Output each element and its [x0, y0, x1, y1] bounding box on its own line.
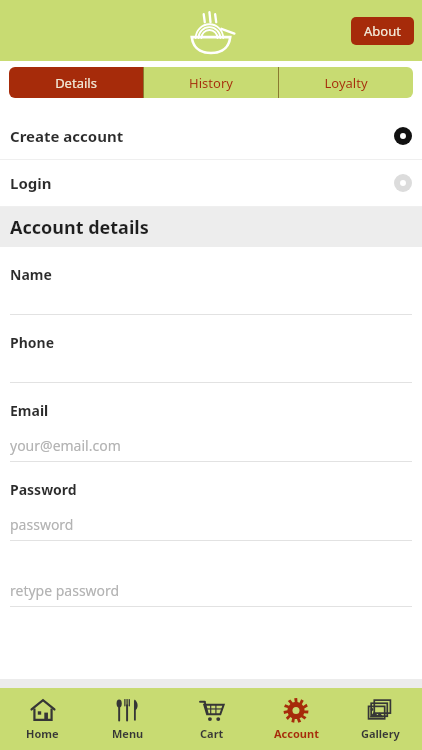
staticText: Create account: [10, 126, 124, 146]
staticText: Home: [26, 726, 59, 741]
button[interactable]: About: [351, 17, 414, 45]
staticText: History: [189, 74, 233, 92]
staticText: Login: [10, 173, 52, 193]
staticText: your@email.com: [10, 436, 121, 455]
button[interactable]: Login: [0, 160, 422, 206]
staticText: Menu: [112, 726, 144, 741]
staticText: password: [10, 515, 74, 534]
staticText: Name: [10, 265, 52, 284]
staticText: Phone: [10, 333, 55, 352]
staticText: Details: [55, 74, 97, 92]
staticText: Account details: [10, 215, 149, 240]
button[interactable]: Menu: [85, 688, 170, 750]
staticText: About: [364, 22, 401, 40]
button[interactable]: Loyalty: [279, 67, 413, 98]
button[interactable]: Account: [254, 688, 338, 750]
button[interactable]: Home: [0, 688, 85, 750]
staticText: Cart: [200, 726, 224, 741]
button[interactable]: Details: [9, 67, 143, 98]
button[interactable]: History: [144, 67, 278, 98]
staticText: Gallery: [361, 726, 400, 741]
staticText: retype password: [10, 581, 120, 600]
button[interactable]: Create account: [0, 113, 422, 159]
staticText: Account: [274, 726, 319, 741]
button[interactable]: Cart: [170, 688, 254, 750]
button[interactable]: Gallery: [338, 688, 422, 750]
staticText: Loyalty: [324, 74, 368, 92]
staticText: Email: [10, 401, 49, 420]
staticText: Password: [10, 480, 77, 499]
